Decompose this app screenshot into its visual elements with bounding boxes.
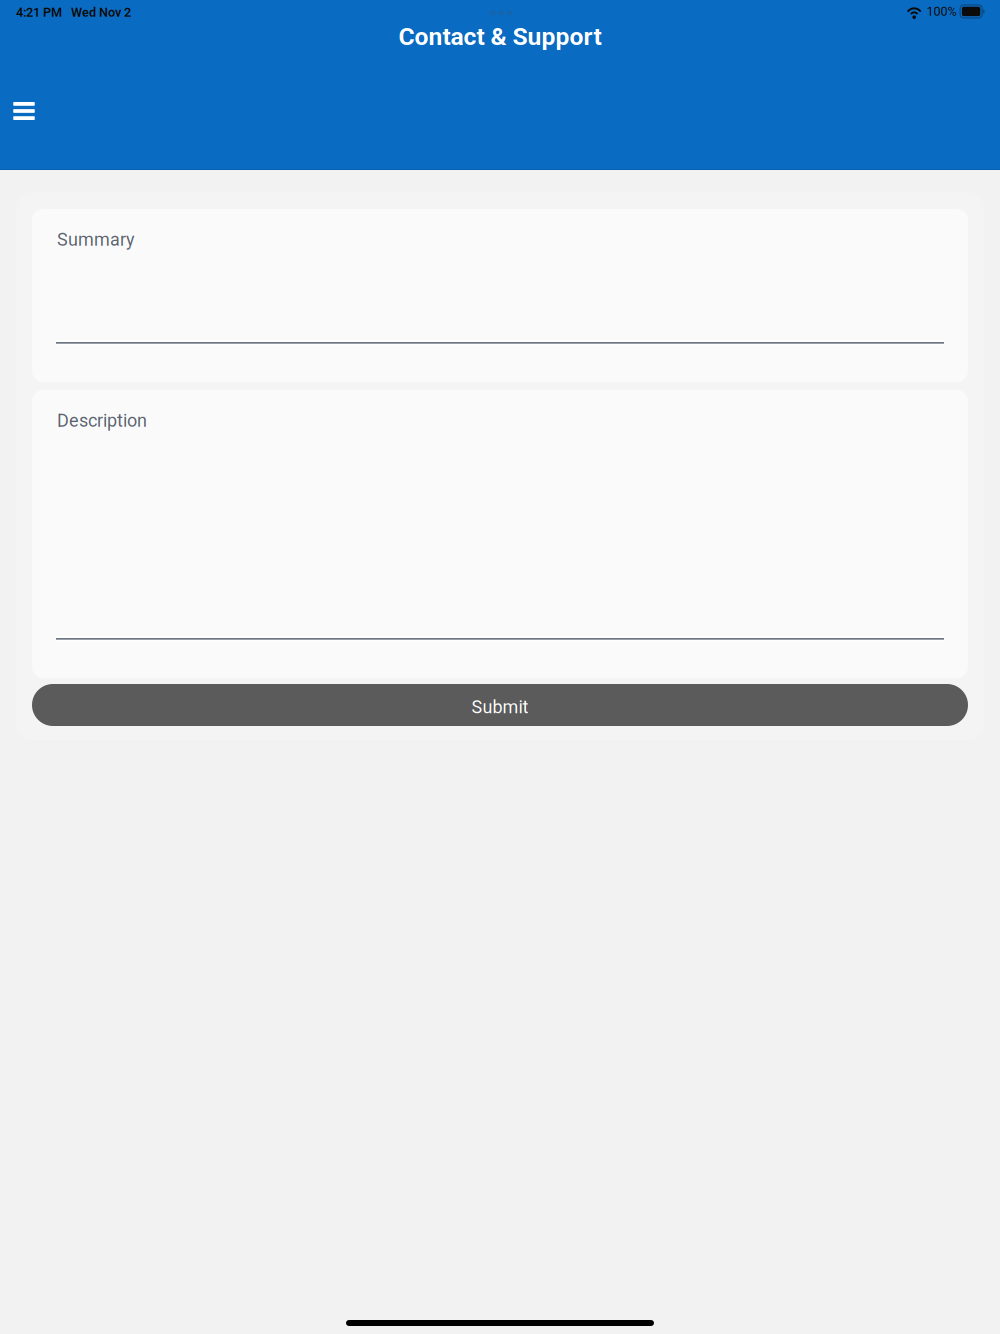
button[interactable]: Summary bbox=[32, 209, 968, 382]
staticText: Submit bbox=[471, 696, 528, 718]
button[interactable]: Menu bbox=[2, 89, 46, 133]
staticText: Summary bbox=[57, 229, 135, 250]
staticText: 100% bbox=[926, 4, 956, 19]
button[interactable]: Description bbox=[32, 390, 968, 678]
staticText: Wed Nov 2 bbox=[71, 5, 131, 20]
staticText: Contact & Support bbox=[398, 22, 601, 51]
button[interactable]: Submit bbox=[32, 684, 968, 726]
staticText: Description bbox=[57, 410, 147, 431]
staticText: 4:21 PM bbox=[16, 5, 62, 20]
